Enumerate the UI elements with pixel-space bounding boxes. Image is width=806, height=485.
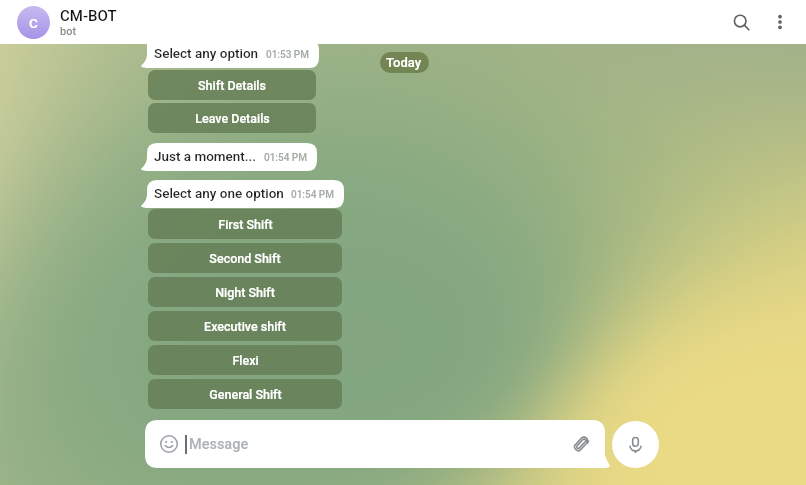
- button[interactable]: Shift Details: [148, 70, 316, 100]
- staticText: First Shift: [218, 217, 273, 232]
- staticText: Night Shift: [215, 285, 275, 300]
- staticText: 01:53 PM: [266, 49, 309, 61]
- staticText: Shift Details: [198, 78, 266, 93]
- staticText: C: [29, 15, 38, 31]
- staticText: Select any option: [154, 45, 259, 61]
- button[interactable]: Leave Details: [148, 103, 316, 133]
- button[interactable]: Record voice message: [612, 421, 659, 468]
- button[interactable]: Executive shift: [148, 311, 342, 341]
- staticText: 01:54 PM: [291, 189, 334, 201]
- staticText: bot: [60, 25, 77, 38]
- button[interactable]: Night Shift: [148, 277, 342, 307]
- staticText: Today: [386, 55, 422, 70]
- button[interactable]: Message: [145, 420, 610, 468]
- button[interactable]: General Shift: [148, 379, 342, 409]
- staticText: 01:54 PM: [264, 152, 307, 164]
- staticText: Just a moment...: [154, 148, 257, 164]
- button[interactable]: Search: [716, 0, 760, 44]
- button[interactable]: Just a moment...: [141, 143, 317, 171]
- button[interactable]: C: [17, 6, 50, 39]
- staticText: Message: [189, 436, 249, 453]
- staticText: Flexi: [232, 353, 259, 368]
- staticText: Leave Details: [195, 111, 270, 126]
- staticText: CM-BOT: [60, 7, 117, 25]
- button[interactable]: First Shift: [148, 209, 342, 239]
- button[interactable]: Select any one option: [141, 180, 344, 208]
- button[interactable]: Second Shift: [148, 243, 342, 273]
- staticText: General Shift: [209, 387, 282, 402]
- staticText: Second Shift: [209, 251, 281, 266]
- button[interactable]: Today: [380, 52, 429, 73]
- button[interactable]: More options: [760, 2, 800, 42]
- button[interactable]: Select any option: [141, 40, 319, 68]
- staticText: Executive shift: [204, 319, 286, 334]
- staticText: Select any one option: [154, 185, 284, 201]
- button[interactable]: Flexi: [148, 345, 342, 375]
